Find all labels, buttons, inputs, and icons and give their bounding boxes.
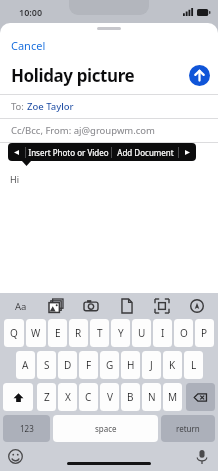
staticText: C	[85, 390, 92, 404]
staticText: Cc/Bcc, From: aj@groupwm.com	[11, 124, 155, 137]
button[interactable]: Send	[189, 65, 210, 86]
button[interactable]: H	[121, 351, 140, 379]
button[interactable]: F	[79, 351, 98, 379]
staticText: Aa	[15, 300, 27, 313]
staticText: S	[44, 358, 50, 372]
button[interactable]: Camera	[82, 297, 100, 315]
button[interactable]: Add Document	[112, 143, 178, 161]
button[interactable]: To:	[0, 95, 218, 118]
button[interactable]: N	[142, 383, 161, 411]
button[interactable]: X	[58, 383, 77, 411]
button[interactable]: G	[100, 351, 119, 379]
button[interactable]: R	[69, 319, 88, 347]
button[interactable]: U	[132, 319, 151, 347]
staticText: L	[191, 358, 197, 372]
button[interactable]: 123	[3, 415, 50, 442]
staticText: N	[148, 390, 156, 404]
staticText: Zoe Taylor	[27, 100, 74, 113]
staticText: K	[169, 358, 176, 372]
button[interactable]: O	[174, 319, 193, 347]
button[interactable]: J	[142, 351, 161, 379]
staticText: W	[31, 326, 41, 340]
staticText: Q	[10, 326, 18, 340]
button[interactable]: P	[195, 319, 214, 347]
button[interactable]: E	[48, 319, 67, 347]
staticText: B	[127, 390, 134, 404]
staticText: X	[65, 390, 71, 404]
staticText: Insert Photo or Video	[28, 147, 109, 158]
staticText: return	[176, 423, 200, 434]
staticText: Hi	[10, 173, 19, 185]
staticText: R	[75, 326, 82, 340]
button[interactable]: Photo library	[47, 297, 65, 315]
button[interactable]: Backspace	[186, 383, 215, 411]
button[interactable]: L	[184, 351, 203, 379]
button[interactable]: space	[53, 415, 158, 442]
button[interactable]: Document	[118, 297, 136, 315]
staticText: M	[168, 390, 178, 404]
staticText: V	[107, 390, 113, 404]
button[interactable]: Q	[4, 319, 24, 347]
button[interactable]: S	[37, 351, 56, 379]
button[interactable]: Cc/Bcc, From: aj@groupwm.com	[0, 119, 218, 142]
staticText: Cancel	[11, 38, 46, 53]
button[interactable]: A	[16, 351, 35, 379]
button[interactable]: M	[163, 383, 182, 411]
staticText: U	[138, 326, 146, 340]
staticText: 10:00	[19, 6, 43, 18]
staticText: G	[106, 358, 114, 372]
button[interactable]: V	[100, 383, 119, 411]
staticText: O	[180, 326, 188, 340]
button[interactable]: return	[161, 415, 215, 442]
staticText: P	[201, 326, 208, 340]
button[interactable]: Cancel	[0, 36, 57, 55]
button[interactable]: B	[121, 383, 140, 411]
button[interactable]: Shift	[3, 383, 33, 411]
button[interactable]: Previous	[8, 143, 25, 161]
staticText: E	[55, 326, 61, 340]
button[interactable]: T	[90, 319, 109, 347]
staticText: space	[95, 423, 117, 434]
staticText: Y	[118, 326, 124, 340]
staticText: 123	[20, 423, 34, 434]
button[interactable]: Scan	[153, 297, 171, 315]
button[interactable]: C	[79, 383, 98, 411]
staticText: Z	[44, 390, 50, 404]
button[interactable]: W	[26, 319, 46, 347]
staticText: J	[150, 358, 153, 372]
staticText: H	[127, 358, 135, 372]
button[interactable]: Insert Photo or Video	[26, 143, 111, 161]
button[interactable]: Emoji	[8, 449, 23, 464]
staticText: D	[64, 358, 72, 372]
button[interactable]: Text format	[12, 297, 30, 315]
button[interactable]: Z	[37, 383, 56, 411]
button[interactable]: D	[58, 351, 77, 379]
staticText: Holiday picture	[11, 64, 135, 87]
staticText: T	[97, 326, 103, 340]
staticText: To:	[11, 100, 27, 113]
button[interactable]: Next	[179, 143, 196, 161]
staticText: F	[86, 358, 92, 372]
button[interactable]: Y	[111, 319, 130, 347]
staticText: Add Document	[117, 147, 174, 158]
button[interactable]: Dictation	[195, 450, 209, 464]
button[interactable]: K	[163, 351, 182, 379]
staticText: I	[161, 326, 165, 340]
button[interactable]: Markup	[188, 297, 206, 315]
button[interactable]: I	[153, 319, 172, 347]
staticText: A	[22, 358, 29, 372]
